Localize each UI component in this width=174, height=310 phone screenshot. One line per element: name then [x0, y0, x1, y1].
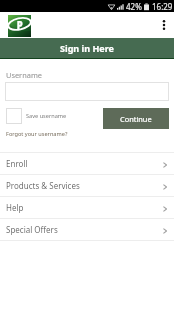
button[interactable]: Products & Services [0, 175, 174, 196]
staticText: Username [6, 70, 42, 80]
staticText: Special Offers [6, 224, 58, 235]
button[interactable]: Sign in Here [0, 38, 174, 58]
staticText: Sign in Here [60, 42, 114, 54]
button[interactable]: Save username [6, 108, 67, 124]
staticText: Help [6, 202, 24, 213]
button[interactable] [5, 82, 169, 101]
staticText: Products & Services [6, 180, 80, 191]
staticText: 16:29 [152, 1, 173, 12]
staticText: P [17, 17, 23, 29]
button[interactable]: Forgot your username? [6, 130, 68, 138]
staticText: CREDIT CARD [15, 33, 24, 35]
button[interactable]: Help [0, 197, 174, 218]
staticText: Save username [26, 112, 67, 120]
button[interactable]: More options [152, 12, 174, 38]
staticText: Continue [120, 114, 152, 124]
button[interactable]: Special Offers [0, 219, 174, 240]
staticText: Enroll [6, 158, 28, 169]
staticText: 42% [126, 1, 142, 12]
button[interactable]: Enroll [0, 153, 174, 174]
button[interactable]: Continue [103, 108, 169, 129]
